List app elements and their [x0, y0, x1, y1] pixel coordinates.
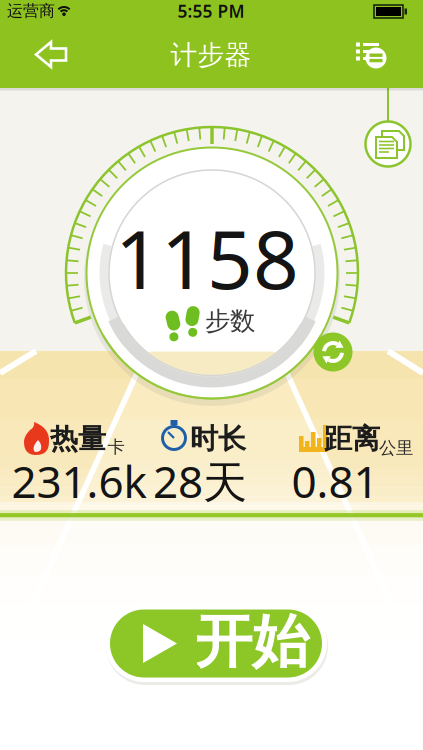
staticText: 卡	[107, 436, 124, 458]
button[interactable]: 刷新	[0, 0, 423, 750]
button[interactable]: 历史记录	[0, 0, 423, 750]
button[interactable]: 返回	[0, 0, 423, 750]
staticText: 运营商	[7, 1, 55, 21]
button[interactable]: 开始	[0, 0, 423, 750]
staticText: 距离	[324, 422, 380, 456]
staticText: 步数	[205, 305, 255, 336]
staticText: 热量	[50, 422, 106, 456]
staticText: 时长	[190, 422, 246, 456]
staticText: 开始	[195, 607, 309, 677]
staticText: 1158	[115, 205, 299, 311]
staticText: 公里	[379, 437, 413, 459]
staticText: 计步器	[170, 39, 251, 71]
staticText: 231.6k	[11, 452, 146, 510]
button[interactable]: 统计列表	[0, 0, 423, 750]
staticText: 5:55 PM	[177, 0, 244, 22]
staticText: 28天	[153, 452, 247, 510]
staticText: 0.81	[291, 452, 378, 510]
